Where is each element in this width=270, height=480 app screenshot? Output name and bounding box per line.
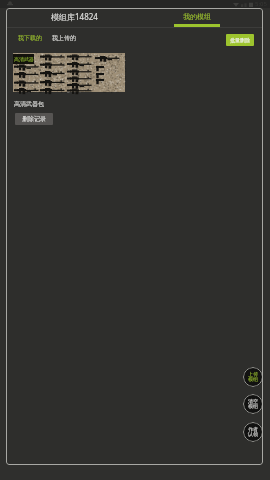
button[interactable]: 删除记录: [15, 113, 53, 125]
staticText: 删除记录: [22, 115, 46, 123]
staticText: 高清武器: [14, 56, 34, 62]
staticText: 5:05: [255, 0, 267, 8]
button[interactable]: 作者认领: [243, 422, 263, 442]
staticText: 我的模组: [183, 12, 211, 21]
button[interactable]: 我上传的: [51, 32, 77, 44]
staticText: 我下载的: [18, 34, 42, 42]
staticText: 模组库14824: [51, 11, 98, 22]
staticText: 高清武器包: [14, 100, 44, 108]
staticText: 我上传的: [52, 34, 76, 42]
staticText: 清空 模组: [248, 398, 258, 410]
button[interactable]: 我的模组: [174, 12, 220, 27]
staticText: 批量删除: [230, 37, 250, 43]
button[interactable]: 高清武器: [13, 53, 125, 92]
button[interactable]: 上传模组: [243, 367, 263, 387]
button[interactable]: 清空模组: [243, 394, 263, 414]
button[interactable]: 批量删除: [226, 34, 254, 46]
staticText: 上传 模组: [248, 371, 258, 383]
button[interactable]: 我下载的: [17, 32, 43, 44]
staticText: 作者 认领: [248, 426, 258, 438]
